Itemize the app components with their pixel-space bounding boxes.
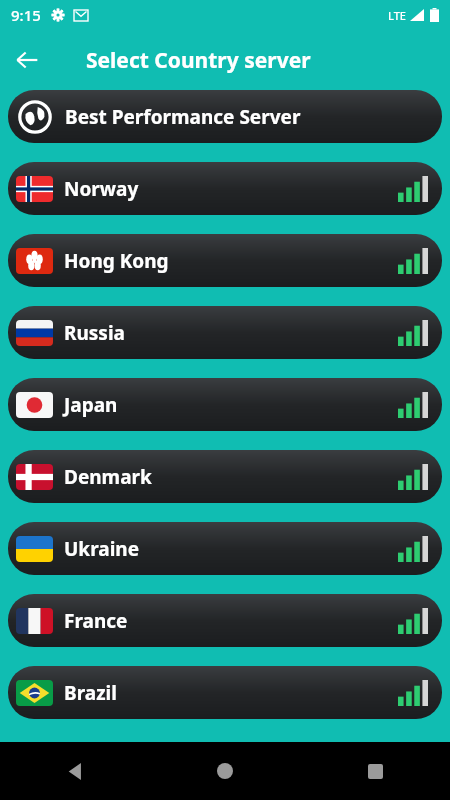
staticText: Ukraine [64,536,140,562]
button[interactable]: Brazil [8,666,442,719]
button[interactable]: Hong Kong [8,234,442,287]
button[interactable]: Back [51,747,99,795]
staticText: 9:15 [11,5,41,25]
button[interactable]: Russia [8,306,442,359]
staticText: Best Performance Server [65,104,301,130]
button[interactable]: Japan [8,378,442,431]
button[interactable]: France [8,594,442,647]
staticText: Norway [64,176,139,202]
button[interactable]: Navigate up [0,33,54,87]
button[interactable]: Norway [8,162,442,215]
staticText: LTE [388,8,406,23]
button[interactable]: Best Performance Server [8,90,442,143]
staticText: Japan [64,392,118,418]
button[interactable]: Recent apps [351,747,399,795]
staticText: Hong Kong [64,248,169,274]
staticText: Denmark [64,464,152,490]
staticText: Russia [64,320,125,346]
staticText: Select Country server [86,46,311,75]
button[interactable]: Home [201,747,249,795]
staticText: France [64,608,128,634]
staticText: Brazil [64,680,117,706]
button[interactable]: Denmark [8,450,442,503]
button[interactable]: Ukraine [8,522,442,575]
